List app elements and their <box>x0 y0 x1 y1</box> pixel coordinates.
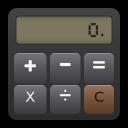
button[interactable]: Clear <box>84 85 114 114</box>
button[interactable]: Subtract <box>50 53 80 84</box>
button[interactable]: Multiply <box>14 85 46 114</box>
button[interactable]: Divide <box>50 85 80 114</box>
staticText: C <box>94 88 104 105</box>
staticText: X <box>25 88 35 105</box>
button[interactable]: Add <box>14 53 46 84</box>
button[interactable]: Equals <box>84 53 114 84</box>
